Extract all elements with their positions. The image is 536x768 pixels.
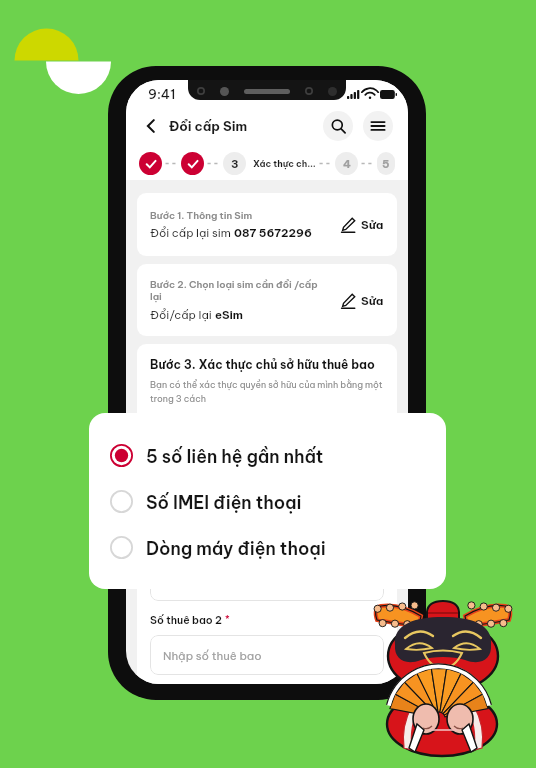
- button[interactable]: 5: [377, 152, 395, 175]
- button[interactable]: Số IMEI điện thoại: [150, 452, 384, 482]
- staticText: Số IMEI điện thoại: [174, 460, 272, 474]
- staticText: 5: [382, 157, 390, 171]
- staticText: Xác thực ch...: [253, 158, 316, 169]
- staticText: Bước 2. Chọn loại sim cần đổi /cấp lại: [150, 278, 323, 303]
- staticText: Số thuê bao 2: [150, 613, 225, 626]
- button[interactable]: Back: [138, 113, 164, 139]
- staticText: 3: [231, 157, 239, 171]
- staticText: Bước 1. Thông tin Sim: [150, 209, 253, 221]
- button[interactable]: Completed step: [139, 152, 162, 175]
- staticText: Sửa: [361, 293, 384, 308]
- button[interactable]: Search: [323, 111, 353, 141]
- staticText: Bạn có thể xác thực quyền sở hữu của mìn…: [150, 379, 384, 404]
- button[interactable]: Số IMEI điện thoại: [110, 490, 446, 513]
- staticText: Dòng máy điện thoại: [146, 537, 326, 559]
- button[interactable]: Dòng máy điện thoại: [110, 536, 446, 559]
- staticText: 087 5672296: [234, 226, 312, 240]
- button[interactable]: Bước 2. Chọn loại sim cần đổi /cấp lại: [137, 264, 397, 336]
- staticText: Đổi cấp Sim: [169, 118, 248, 134]
- button[interactable]: Nhập số thuê bao: [150, 635, 384, 675]
- button[interactable]: 3: [223, 152, 246, 175]
- staticText: Đổi/cấp lại: [150, 308, 215, 322]
- staticText: Nhập số thuê bao: [163, 648, 262, 663]
- staticText: 5 số liên hệ gần nhất: [146, 445, 324, 467]
- button[interactable]: Sửa: [337, 213, 384, 236]
- button[interactable]: Nhập số thuê bao: [150, 561, 384, 601]
- staticText: *: [225, 613, 230, 624]
- button[interactable]: Sửa: [337, 289, 384, 312]
- button[interactable]: 4: [335, 152, 358, 175]
- button[interactable]: Completed step: [181, 152, 204, 175]
- staticText: Sửa: [361, 217, 384, 232]
- staticText: eSim: [215, 308, 243, 322]
- staticText: *: [222, 538, 227, 549]
- staticText: Bước 3. Xác thực chủ sở hữu thuê bao: [150, 357, 375, 372]
- staticText: Số IMEI điện thoại: [146, 491, 302, 513]
- button[interactable]: Bước 1. Thông tin Sim: [137, 193, 397, 256]
- staticText: Dòng máy điện thoại: [174, 490, 288, 504]
- button[interactable]: 5 số liên hệ gần nhất: [150, 422, 384, 452]
- staticText: Số thuê bao 1: [150, 538, 222, 551]
- button[interactable]: 5 số liên hệ gần nhất: [110, 444, 446, 467]
- button[interactable]: Menu: [363, 111, 393, 141]
- button[interactable]: Dòng máy điện thoại: [150, 482, 384, 512]
- staticText: 4: [343, 157, 351, 171]
- staticText: 9:41: [148, 86, 176, 102]
- staticText: Đổi cấp lại sim: [150, 226, 234, 240]
